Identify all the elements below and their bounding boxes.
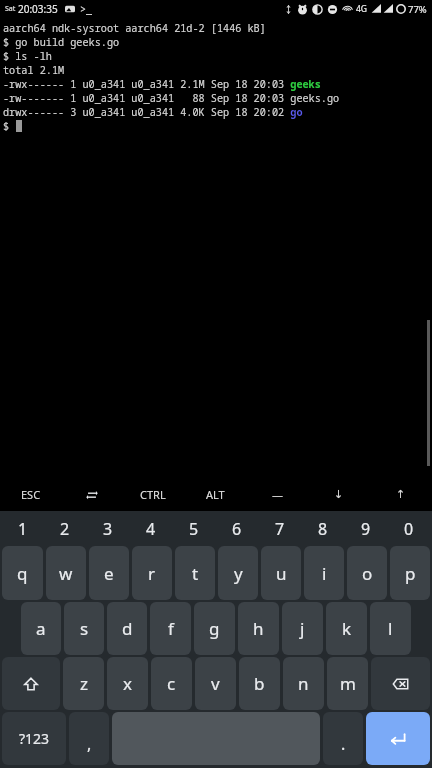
button[interactable]: 2 — [44, 514, 86, 544]
staticText: u — [276, 562, 287, 585]
button[interactable]: 0 — [387, 514, 430, 544]
staticText: s — [80, 617, 89, 640]
staticText: ↑ — [396, 488, 406, 501]
button[interactable]: Backspace — [371, 657, 430, 710]
button[interactable]: d — [107, 602, 147, 655]
staticText: a — [36, 617, 46, 640]
button[interactable]: s — [64, 602, 104, 655]
button[interactable]: g — [194, 602, 235, 655]
button[interactable]: w — [46, 546, 86, 600]
staticText: CTRL — [140, 487, 166, 502]
button[interactable]: Shift — [2, 657, 60, 710]
staticText: 9 — [361, 518, 371, 540]
staticText: 1 — [18, 518, 28, 540]
staticText: 6 — [232, 518, 242, 540]
button[interactable]: CTRL — [122, 478, 184, 511]
button[interactable]: — — [246, 478, 308, 511]
staticText: v — [211, 672, 220, 695]
button[interactable]: ESC — [0, 478, 61, 511]
staticText: 0 — [404, 518, 414, 540]
staticText: k — [342, 617, 352, 640]
staticText: 8 — [318, 518, 328, 540]
staticText: $ go build geeks.go — [3, 35, 120, 49]
button[interactable]: r — [132, 546, 172, 600]
staticText: f — [168, 617, 174, 640]
staticText: m — [340, 672, 356, 695]
button[interactable]: 7 — [258, 514, 301, 544]
button[interactable]: h — [238, 602, 279, 655]
button[interactable]: Tab — [61, 478, 122, 511]
staticText: . — [341, 733, 346, 755]
button[interactable]: , — [69, 712, 109, 765]
button[interactable]: l — [370, 602, 411, 655]
button[interactable]: 8 — [301, 514, 344, 544]
staticText: $ ls -lh — [3, 49, 52, 63]
staticText: q — [17, 562, 28, 585]
button[interactable]: t — [175, 546, 215, 600]
staticText: 7 — [275, 518, 285, 540]
button[interactable]: k — [326, 602, 367, 655]
staticText: 5 — [189, 518, 199, 540]
button[interactable]: z — [63, 657, 104, 710]
button[interactable]: v — [195, 657, 236, 710]
staticText: -rw------- 1 u0_a341 u0_a341 88 Sep 18 2… — [3, 91, 340, 105]
button[interactable]: a — [21, 602, 61, 655]
button[interactable]: Enter — [366, 712, 430, 765]
staticText: 77% — [408, 3, 427, 16]
button[interactable]: ↑ — [370, 478, 432, 511]
staticText: total 2.1M — [3, 63, 65, 77]
staticText: ESC — [21, 487, 41, 502]
staticText: i — [322, 562, 327, 585]
staticText: z — [80, 672, 88, 695]
staticText: — — [272, 487, 283, 502]
button[interactable]: 4 — [129, 514, 172, 544]
staticText: ?123 — [19, 729, 50, 748]
button[interactable]: y — [218, 546, 258, 600]
button[interactable]: c — [151, 657, 192, 710]
button[interactable]: 9 — [344, 514, 387, 544]
button[interactable]: 5 — [172, 514, 215, 544]
staticText: r — [148, 562, 156, 585]
staticText: e — [104, 562, 114, 585]
staticText: ALT — [206, 487, 225, 502]
staticText: l — [388, 617, 393, 640]
button[interactable]: . — [323, 712, 363, 765]
staticText: , — [87, 733, 92, 755]
button[interactable]: 6 — [215, 514, 258, 544]
staticText: aarch64 ndk-sysroot aarch64 21d-2 [1446 … — [3, 21, 266, 35]
button[interactable]: u — [261, 546, 301, 600]
staticText: drwx------ 3 u0_a341 u0_a341 4.0K Sep 18… — [3, 105, 303, 119]
staticText: g — [209, 617, 220, 640]
staticText: >_ — [80, 2, 92, 16]
button[interactable]: e — [89, 546, 129, 600]
button[interactable]: m — [327, 657, 368, 710]
staticText: o — [362, 562, 373, 585]
staticText: p — [405, 562, 416, 585]
staticText: ↓ — [334, 488, 344, 501]
staticText: 4 — [146, 518, 156, 540]
button[interactable]: i — [304, 546, 344, 600]
staticText: c — [167, 672, 176, 695]
button[interactable]: p — [390, 546, 430, 600]
button[interactable]: 1 — [2, 514, 44, 544]
staticText: j — [300, 617, 305, 640]
button[interactable]: ?123 — [2, 712, 66, 765]
button[interactable]: b — [239, 657, 280, 710]
staticText: Sat — [5, 4, 16, 14]
staticText: n — [298, 672, 309, 695]
staticText: 3 — [103, 518, 113, 540]
staticText: -rwx------ 1 u0_a341 u0_a341 2.1M Sep 18… — [3, 77, 321, 91]
button[interactable]: 3 — [86, 514, 129, 544]
button[interactable]: j — [282, 602, 323, 655]
button[interactable]: n — [283, 657, 324, 710]
button[interactable]: o — [347, 546, 387, 600]
staticText: $ — [3, 119, 16, 133]
button[interactable]: ↓ — [308, 478, 370, 511]
button[interactable]: q — [2, 546, 43, 600]
staticText: t — [192, 562, 199, 585]
staticText: w — [59, 562, 73, 585]
button[interactable]: ALT — [184, 478, 246, 511]
button[interactable]: f — [150, 602, 191, 655]
button[interactable]: x — [107, 657, 148, 710]
